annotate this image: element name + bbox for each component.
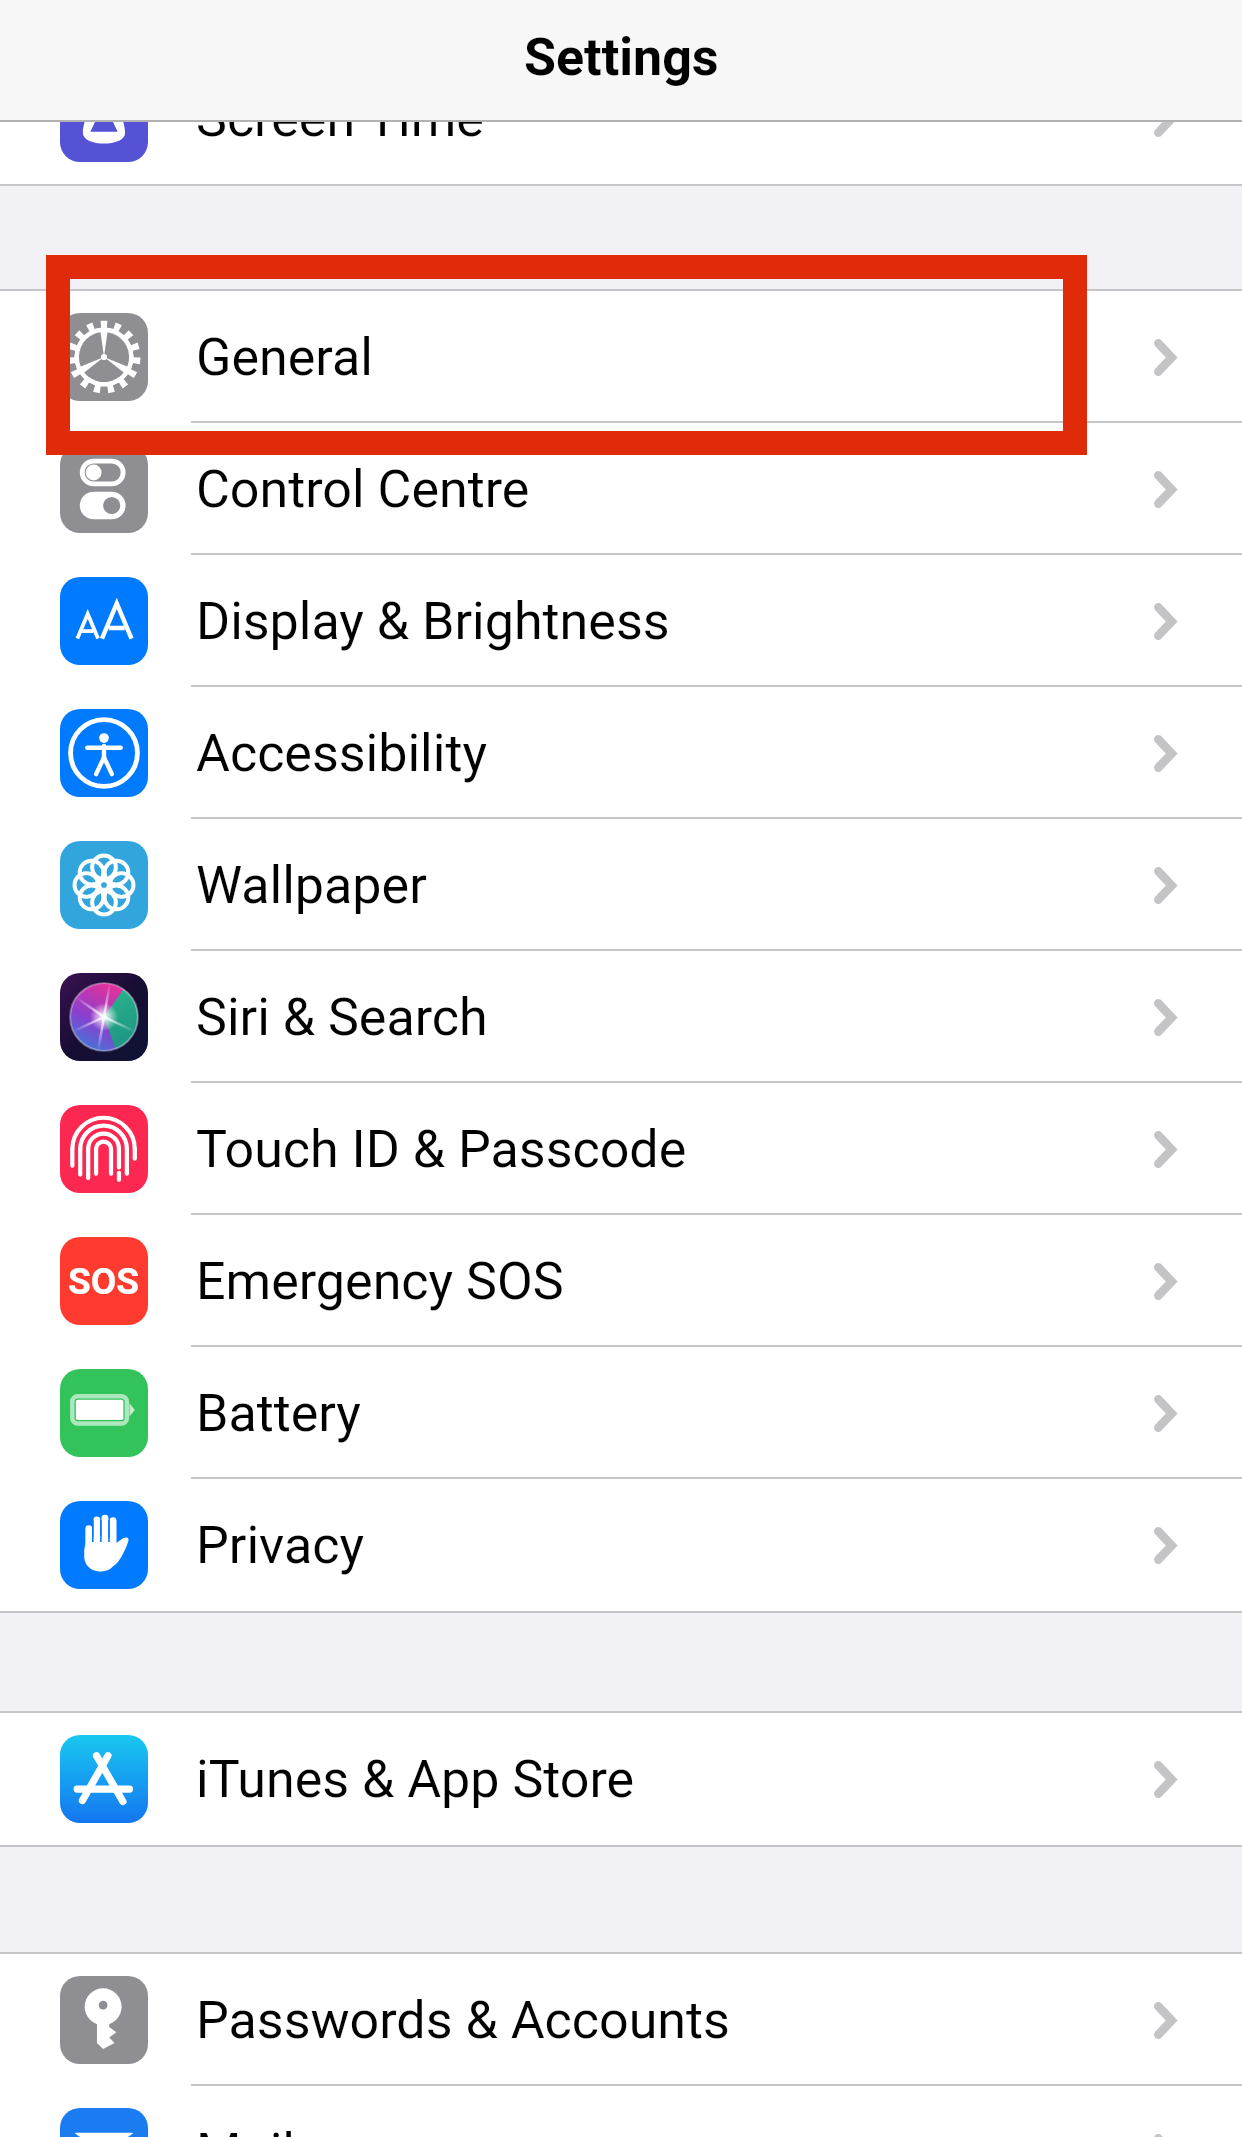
staticText: Control Centre [196, 459, 530, 520]
button[interactable]: Control Centre [0, 423, 1242, 555]
button[interactable]: SOS [0, 1215, 1242, 1347]
staticText: Emergency SOS [196, 1251, 564, 1312]
button[interactable]: Battery [0, 1347, 1242, 1479]
button[interactable]: Touch ID & Passcode [0, 1083, 1242, 1215]
button[interactable]: iTunes & App Store [0, 1713, 1242, 1845]
button[interactable]: Wallpaper [0, 819, 1242, 951]
staticText: General [196, 327, 373, 388]
button[interactable]: Privacy [0, 1479, 1242, 1611]
staticText: Wallpaper [196, 855, 427, 916]
staticText: Settings [524, 27, 719, 88]
button[interactable]: Passwords & Accounts [0, 1954, 1242, 2086]
staticText: Touch ID & Passcode [196, 1119, 687, 1180]
button[interactable]: Mail [0, 2086, 1242, 2137]
staticText: Display & Brightness [196, 591, 670, 652]
staticText: Mail [196, 2122, 295, 2137]
staticText: iTunes & App Store [196, 1749, 635, 1810]
button[interactable]: Screen Time [0, 52, 1242, 184]
button[interactable]: General [0, 291, 1242, 423]
staticText: Siri & Search [196, 987, 488, 1048]
staticText: SOS [68, 1260, 140, 1303]
staticText: Battery [196, 1383, 361, 1444]
button[interactable]: Accessibility [0, 687, 1242, 819]
staticText: Screen Time [196, 88, 484, 149]
button[interactable]: Siri & Search [0, 951, 1242, 1083]
staticText: Passwords & Accounts [196, 1990, 730, 2051]
staticText: Accessibility [196, 723, 488, 784]
staticText: Privacy [196, 1515, 364, 1576]
button[interactable]: Display & Brightness [0, 555, 1242, 687]
